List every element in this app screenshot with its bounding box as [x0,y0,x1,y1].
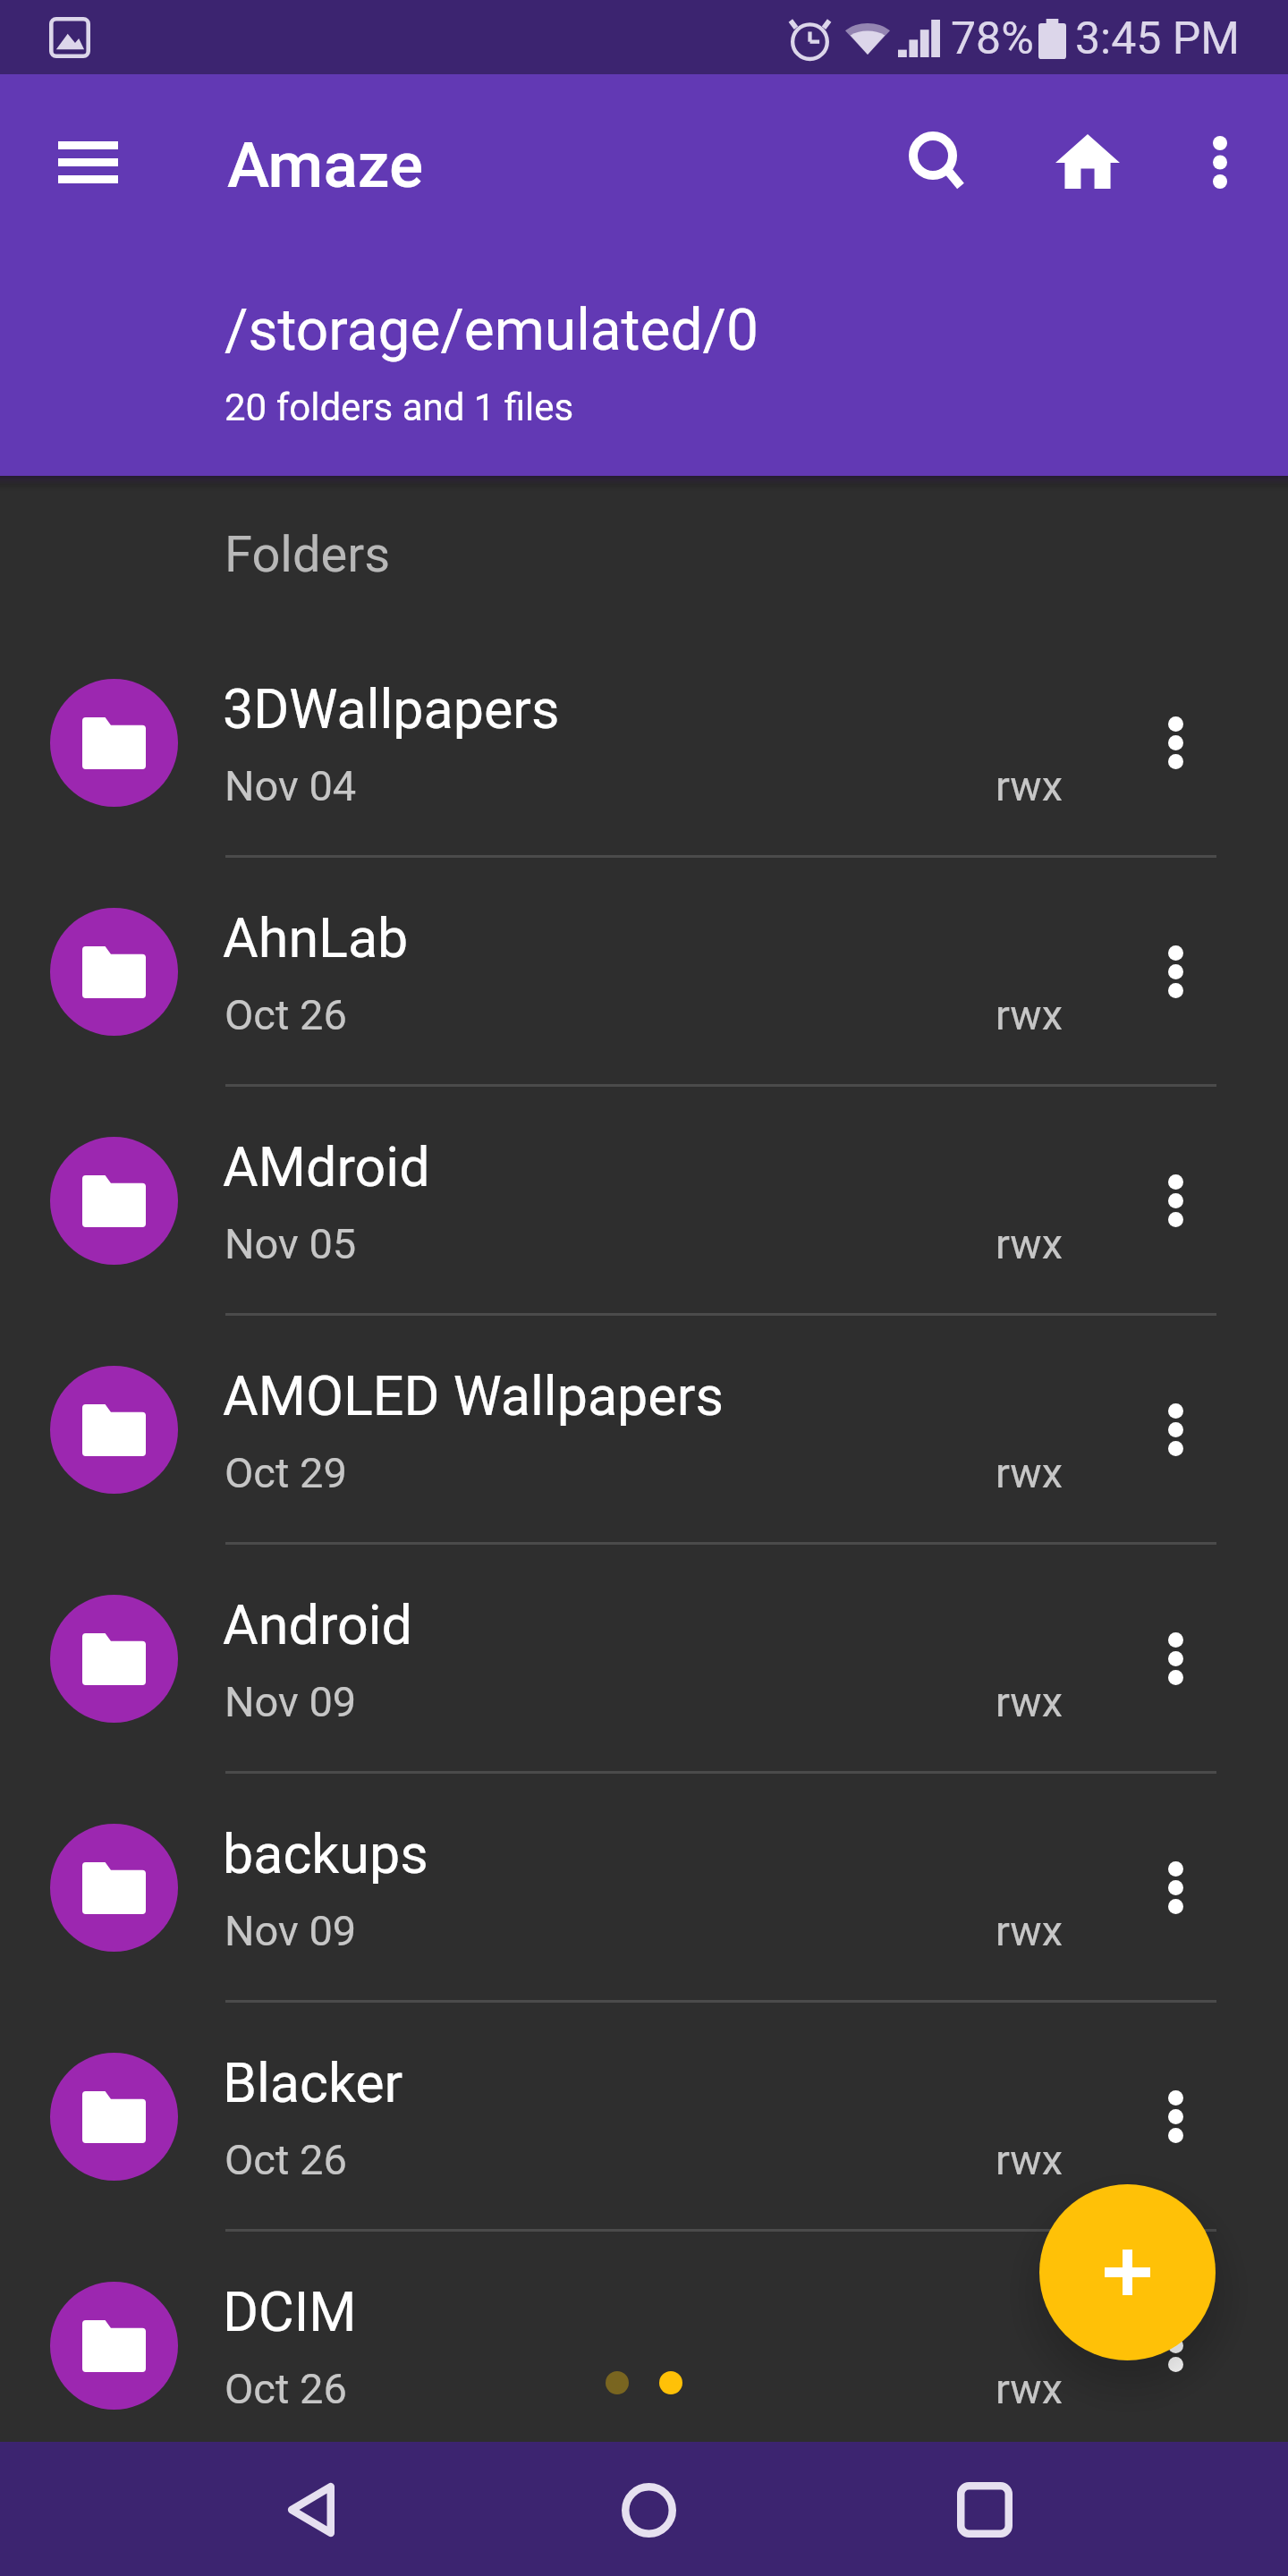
staticText: rwx [996,1219,1063,1268]
staticText: rwx [996,761,1063,810]
button[interactable]: Home [581,2443,716,2576]
staticText: Oct 26 [225,2364,347,2413]
staticText: Oct 26 [225,990,347,1039]
staticText: rwx [996,990,1063,1039]
staticText: 78% [951,13,1034,65]
button[interactable]: AMdroid [0,1087,1288,1316]
button[interactable]: More options [1117,684,1233,801]
staticText: 20 folders and 1 files [225,386,574,429]
button[interactable]: backups [0,1774,1288,2003]
button[interactable]: More options [1117,1829,1233,1945]
staticText: AMdroid [223,1135,430,1199]
button[interactable]: More options [1117,2287,1233,2403]
staticText: Nov 09 [225,1677,357,1726]
staticText: /storage/emulated/0 [225,297,758,364]
button[interactable]: AMOLED Wallpapers [0,1316,1288,1545]
button[interactable]: Home [1021,94,1155,228]
button[interactable]: Back [243,2443,377,2576]
button[interactable]: More options [1117,2058,1233,2174]
button[interactable]: DCIM [0,2232,1288,2461]
button[interactable]: More options [1117,913,1233,1030]
button[interactable]: More options [1117,1600,1233,1716]
staticText: Nov 05 [225,1219,357,1268]
staticText: Oct 26 [225,2135,347,2184]
staticText: rwx [996,1906,1063,1955]
staticText: 3DWallpapers [223,677,560,741]
button[interactable]: Recent apps [918,2443,1052,2576]
staticText: Folders [225,525,391,584]
staticText: backups [223,1822,428,1885]
staticText: AhnLab [223,906,409,970]
staticText: DCIM [223,2280,357,2343]
staticText: rwx [996,2364,1063,2413]
button[interactable]: Open navigation drawer [22,97,153,227]
staticText: Amaze [227,128,424,202]
staticText: Nov 04 [225,761,357,810]
staticText: Nov 09 [225,1906,357,1955]
staticText: Android [223,1593,412,1657]
staticText: AMOLED Wallpapers [223,1364,724,1428]
staticText: 3:45 PM [1075,13,1241,65]
button[interactable]: More options [1153,95,1287,229]
button[interactable]: More options [1117,1142,1233,1258]
button[interactable]: Blacker [0,2003,1288,2232]
button[interactable]: More options [1117,1371,1233,1487]
button[interactable]: Android [0,1545,1288,1774]
button[interactable]: Search [869,93,1003,227]
button[interactable]: AhnLab [0,858,1288,1087]
button[interactable]: 3DWallpapers [0,629,1288,858]
staticText: Blacker [223,2051,403,2114]
staticText: rwx [996,2135,1063,2184]
staticText: rwx [996,1677,1063,1726]
staticText: rwx [996,1448,1063,1497]
button[interactable]: Add [1039,2184,1216,2360]
staticText: Oct 29 [225,1448,347,1497]
